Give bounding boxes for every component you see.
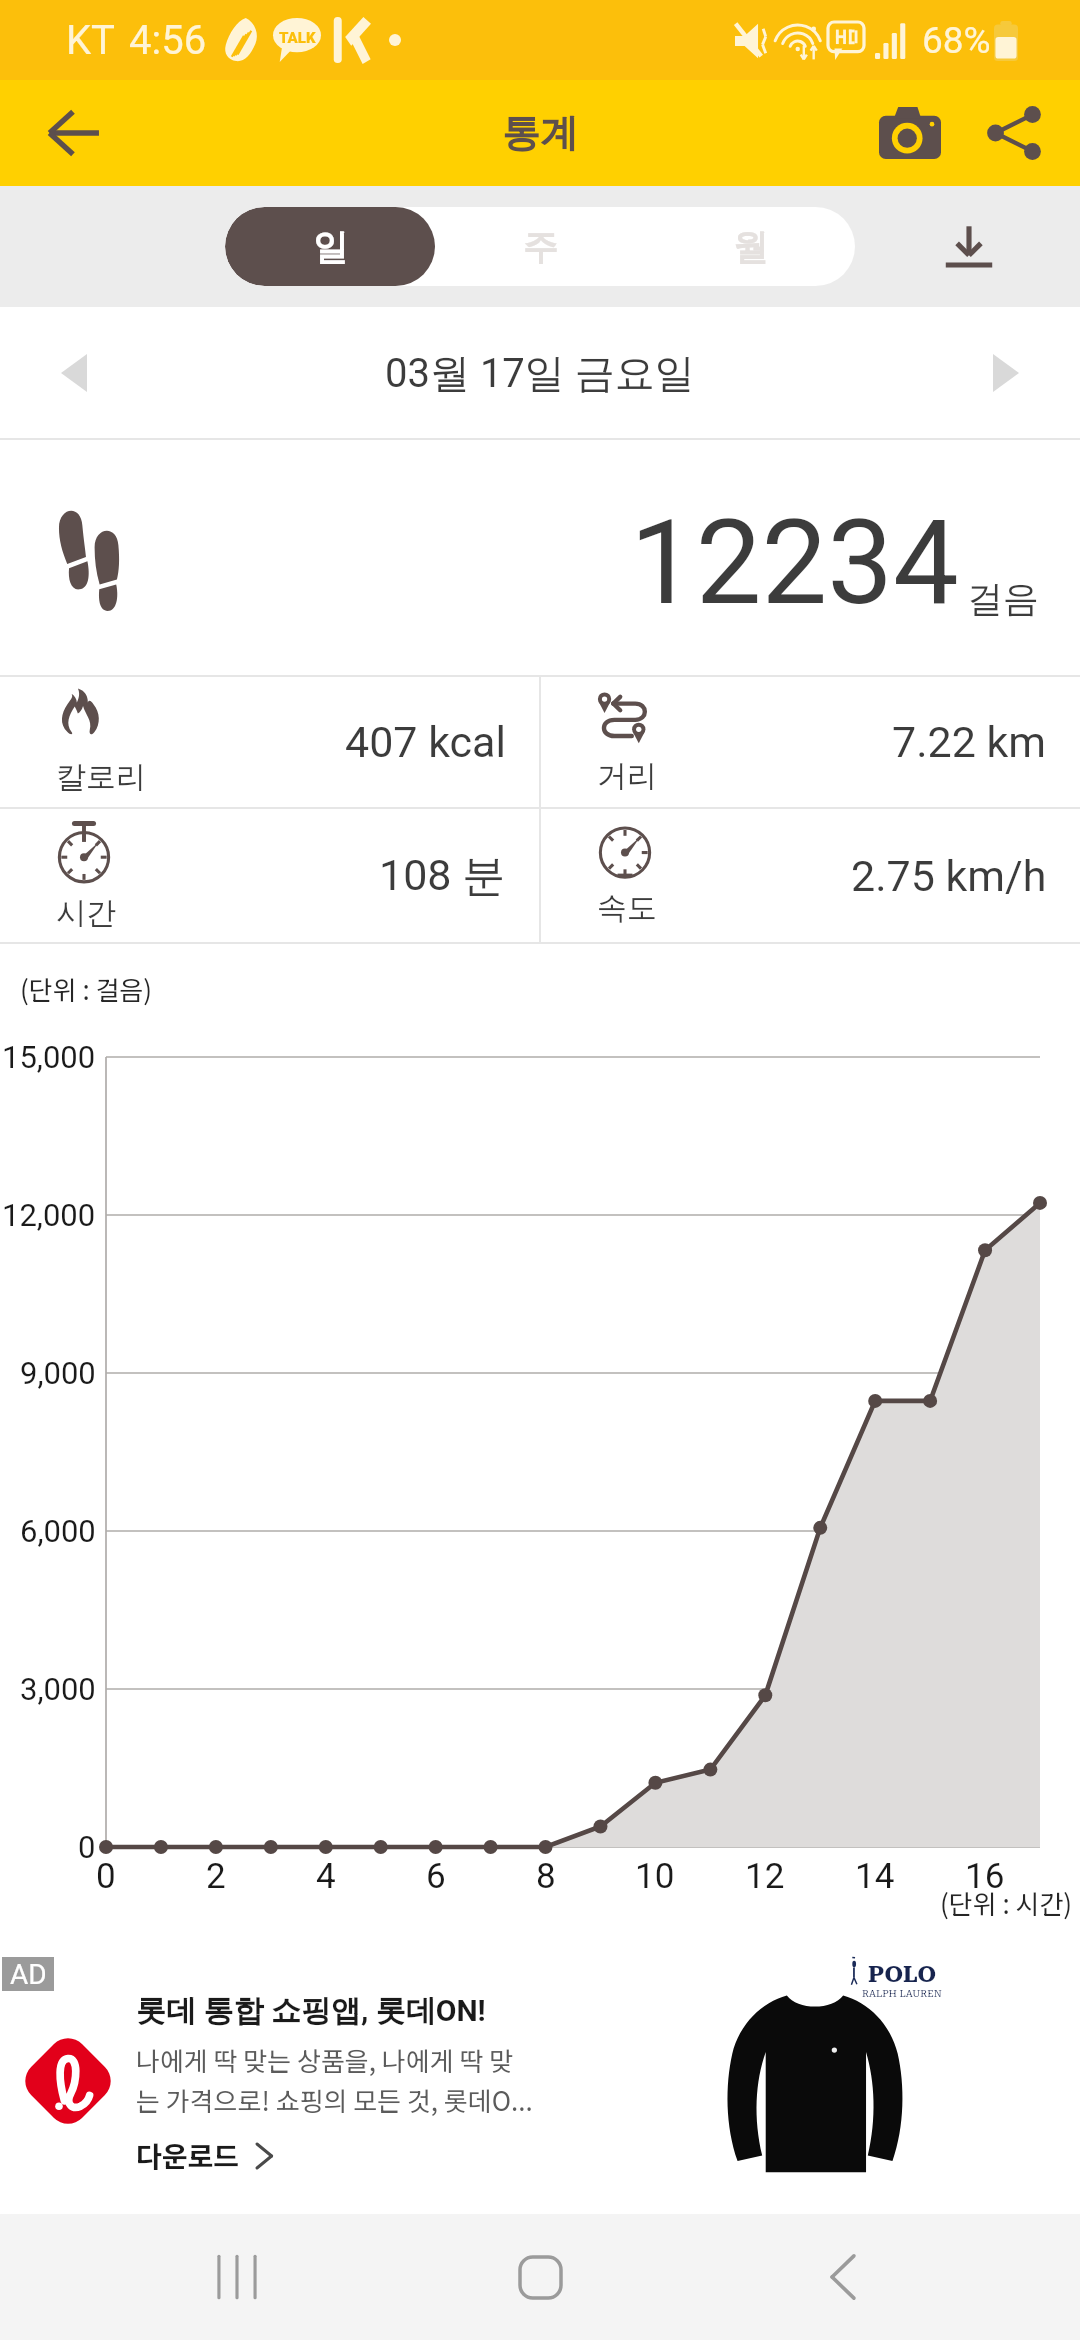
button[interactable]: 월 xyxy=(645,207,855,286)
staticText: 일 xyxy=(313,225,348,269)
staticText: (단위 : 걸음) xyxy=(20,970,153,1008)
staticText: 걸음 xyxy=(967,576,1039,621)
button[interactable]: 칼로리 xyxy=(0,677,539,807)
staticText: 12234 xyxy=(630,494,959,631)
staticText: 12,000 xyxy=(2,1197,96,1233)
button[interactable]: AD xyxy=(0,1949,1080,2214)
button[interactable]: Back xyxy=(773,2214,913,2340)
staticText: 시간 xyxy=(56,894,116,932)
staticText: 15,000 xyxy=(2,1039,96,1075)
staticText: 16 xyxy=(965,1856,1005,1897)
button[interactable]: 속도 xyxy=(541,809,1080,942)
button[interactable]: Next day xyxy=(958,325,1054,421)
staticText: 주 xyxy=(523,225,558,269)
staticText: 7.22 km xyxy=(892,717,1047,767)
staticText: 4 xyxy=(316,1856,336,1897)
staticText: 속도 xyxy=(597,889,657,927)
button[interactable]: Home xyxy=(470,2214,610,2340)
button[interactable]: Recent apps xyxy=(167,2214,307,2340)
staticText: 03월 17일 금요일 xyxy=(385,348,695,398)
staticText: 3,000 xyxy=(20,1671,96,1707)
staticText: 다운로드 xyxy=(136,2135,240,2176)
staticText: (단위 : 시간) xyxy=(940,1884,1073,1922)
button[interactable]: 거리 xyxy=(541,677,1080,807)
button[interactable]: Download xyxy=(919,197,1019,297)
staticText: 68% xyxy=(922,19,991,62)
button[interactable]: Share xyxy=(962,81,1066,185)
staticText: 9,000 xyxy=(20,1355,96,1391)
staticText: 6 xyxy=(426,1856,446,1897)
button[interactable]: Back xyxy=(26,85,122,181)
staticText: 2 xyxy=(206,1856,226,1897)
staticText: 6,000 xyxy=(20,1513,96,1549)
button[interactable]: Camera xyxy=(858,81,962,185)
staticText: POLO xyxy=(868,1961,936,1988)
staticText: 12 xyxy=(745,1856,785,1897)
staticText: 0 xyxy=(96,1856,116,1897)
staticText: 나에게 딱 맞는 상품을, 나에게 딱 맞 는 가격으로! 쇼핑의 모든 것, … xyxy=(136,2041,533,2119)
staticText: 0 xyxy=(78,1829,96,1865)
staticText: 108 분 xyxy=(379,849,506,903)
button[interactable]: 일 xyxy=(225,207,435,286)
staticText: 10 xyxy=(635,1856,675,1897)
staticText: 월 xyxy=(733,225,768,269)
staticText: 14 xyxy=(855,1856,895,1897)
staticText: 407 kcal xyxy=(345,717,506,767)
button[interactable]: Previous day xyxy=(26,325,122,421)
staticText: RALPH LAUREN xyxy=(862,1988,942,2000)
staticText: 롯데 통합 쇼핑앱, 롯데ON! xyxy=(136,1992,486,2030)
staticText: KT xyxy=(66,17,115,64)
staticText: TALK xyxy=(279,29,316,47)
staticText: AD xyxy=(10,1958,47,1991)
staticText: 2.75 km/h xyxy=(851,851,1047,901)
staticText: 8 xyxy=(536,1856,556,1897)
staticText: 4:56 xyxy=(129,17,207,64)
button[interactable]: 주 xyxy=(435,207,645,286)
button[interactable]: 시간 xyxy=(0,809,539,942)
staticText: 통계 xyxy=(502,109,578,157)
staticText: 거리 xyxy=(597,757,657,795)
staticText: 칼로리 xyxy=(56,758,146,796)
